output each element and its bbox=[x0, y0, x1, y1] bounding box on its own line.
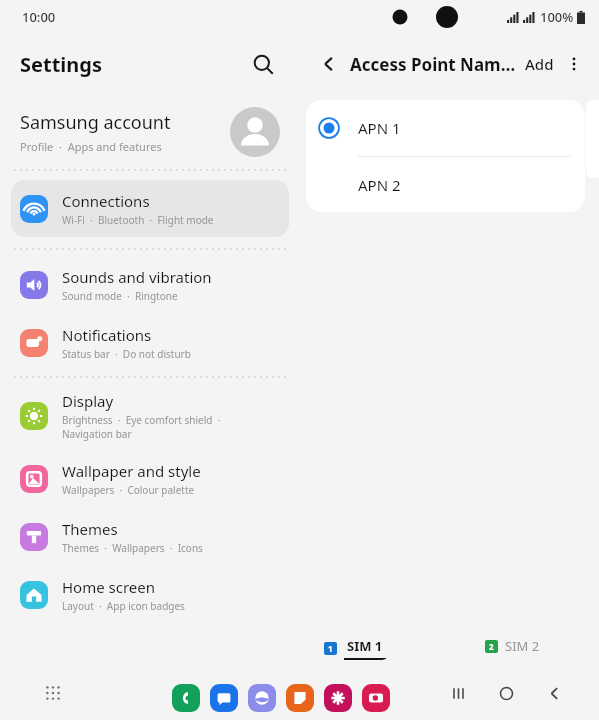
button[interactable]: Themes bbox=[0, 508, 300, 566]
staticText: Samsung account bbox=[20, 110, 171, 135]
staticText: Access Point Nam… bbox=[350, 53, 520, 76]
staticText: Themes · Wallpapers · Icons bbox=[62, 541, 203, 555]
staticText: Status bar · Do not disturb bbox=[62, 347, 191, 361]
staticText: Connections bbox=[62, 191, 150, 211]
button[interactable]: Wallpaper and style bbox=[0, 450, 300, 508]
button[interactable]: Back bbox=[314, 49, 344, 79]
button[interactable]: APN 1 bbox=[306, 100, 585, 156]
button[interactable]: Messages bbox=[210, 684, 238, 712]
button[interactable]: Display bbox=[0, 382, 300, 450]
staticText: Wi-Fi · Bluetooth · Flight mode bbox=[62, 213, 214, 227]
staticText: APN 2 bbox=[358, 175, 401, 195]
button[interactable]: More options bbox=[559, 49, 589, 79]
button[interactable]: Camera bbox=[362, 684, 390, 712]
staticText: 2 bbox=[489, 641, 494, 652]
button[interactable]: 2 bbox=[483, 637, 542, 655]
staticText: Themes bbox=[62, 519, 118, 539]
staticText: 10:00 bbox=[22, 8, 56, 26]
staticText: Sounds and vibration bbox=[62, 267, 212, 287]
button[interactable]: Internet bbox=[248, 684, 276, 712]
button[interactable]: Home screen bbox=[0, 566, 300, 624]
staticText: 100% bbox=[540, 8, 574, 26]
button[interactable]: Connections bbox=[11, 180, 289, 237]
button[interactable]: Phone bbox=[172, 684, 200, 712]
staticText: APN 1 bbox=[358, 118, 401, 138]
staticText: Home screen bbox=[62, 577, 156, 597]
button[interactable]: Notifications bbox=[0, 314, 300, 372]
staticText: Wallpaper and style bbox=[62, 461, 201, 481]
staticText: Layout · App icon badges bbox=[62, 599, 185, 613]
staticText: Display bbox=[62, 391, 114, 411]
button[interactable]: 1 bbox=[322, 637, 388, 660]
staticText: Profile · Apps and features bbox=[20, 139, 162, 154]
staticText: Brightness · Eye comfort shield · Naviga… bbox=[62, 413, 221, 441]
staticText: SIM 2 bbox=[505, 637, 540, 655]
staticText: Notifications bbox=[62, 325, 152, 345]
button[interactable]: Notes bbox=[286, 684, 314, 712]
staticText: Add bbox=[525, 54, 554, 74]
button[interactable]: Search bbox=[244, 45, 282, 83]
staticText: SIM 1 bbox=[347, 637, 383, 655]
staticText: Settings bbox=[20, 51, 102, 78]
button[interactable]: Apps bbox=[38, 678, 68, 708]
button[interactable]: Add bbox=[520, 50, 559, 78]
button[interactable]: Gallery bbox=[324, 684, 352, 712]
button[interactable]: Recents bbox=[443, 678, 473, 708]
button[interactable]: Samsung account bbox=[0, 94, 300, 169]
button[interactable]: Sounds and vibration bbox=[0, 256, 300, 314]
staticText: Wallpapers · Colour palette bbox=[62, 483, 195, 497]
staticText: 1 bbox=[328, 643, 333, 654]
staticText: Sound mode · Ringtone bbox=[62, 289, 178, 303]
button[interactable]: APN 2 bbox=[306, 157, 585, 212]
button[interactable]: Back bbox=[539, 678, 569, 708]
button[interactable]: Home bbox=[491, 678, 521, 708]
